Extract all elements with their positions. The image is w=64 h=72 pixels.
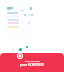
button[interactable]: Next bbox=[17, 53, 23, 59]
button[interactable] bbox=[0, 53, 64, 72]
staticText: your SCHEDULE bbox=[20, 63, 44, 67]
staticText: Easy to track bbox=[25, 59, 40, 62]
